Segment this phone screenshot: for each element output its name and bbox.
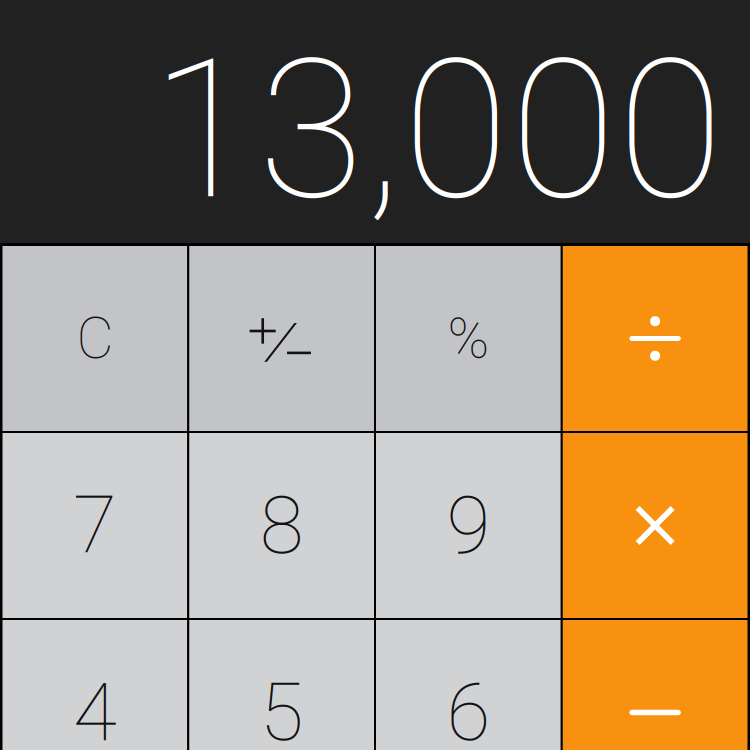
button[interactable]: Subtract [563, 620, 748, 750]
button[interactable]: Plus minus [189, 246, 374, 431]
button[interactable]: 4 [2, 620, 187, 750]
button[interactable]: Multiply [563, 433, 748, 618]
staticText: 5 [260, 666, 304, 750]
button[interactable]: Percent [376, 246, 561, 431]
staticText: 9 [446, 479, 490, 572]
button[interactable]: 9 [376, 433, 561, 618]
staticText: 6 [446, 666, 490, 750]
button[interactable]: 7 [2, 433, 187, 618]
staticText: % [447, 306, 489, 371]
button[interactable]: 8 [189, 433, 374, 618]
button[interactable]: 6 [376, 620, 561, 750]
staticText: C [76, 305, 113, 372]
staticText: 4 [73, 666, 117, 750]
staticText: 13,000 [151, 17, 723, 244]
button[interactable]: Divide [563, 246, 748, 431]
staticText: 8 [260, 479, 304, 572]
button[interactable]: Clear [2, 246, 187, 431]
button[interactable]: 5 [189, 620, 374, 750]
staticText: 7 [73, 479, 117, 572]
